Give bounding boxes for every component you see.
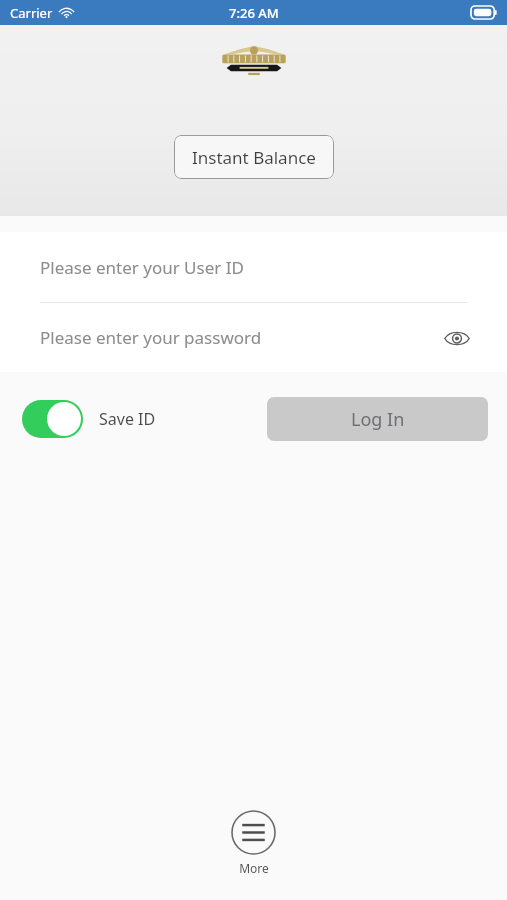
button[interactable]: More [0,800,507,900]
staticText: More [239,860,269,876]
staticText: Instant Balance [192,146,316,169]
staticText: Please enter your User ID [40,256,244,279]
staticText: Log In [351,407,405,432]
staticText: 7:26 AM [229,4,279,22]
staticText: Save ID [99,408,156,430]
button[interactable]: Please enter your password [0,303,507,372]
button[interactable]: Please enter your User ID [0,232,507,302]
button[interactable]: Save ID [22,400,156,438]
staticText: Carrier [10,4,53,22]
staticText: Please enter your password [40,326,262,349]
button[interactable]: Instant Balance [174,135,334,179]
button[interactable]: Log In [267,397,488,441]
button[interactable]: Show password [440,321,474,355]
